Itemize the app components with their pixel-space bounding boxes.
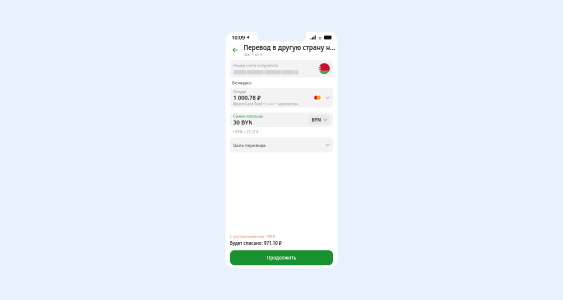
button[interactable]: Цель перевода	[75, 99, 487, 160]
